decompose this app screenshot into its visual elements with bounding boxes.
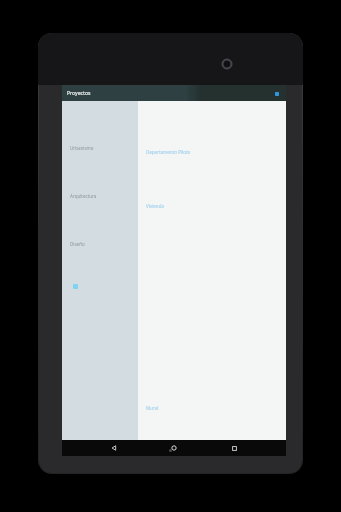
button[interactable]: Urbanismo <box>62 143 138 153</box>
button[interactable]: Diseño <box>62 239 138 249</box>
button[interactable]: Back <box>106 440 122 456</box>
staticText: Mural <box>146 405 159 411</box>
button[interactable]: Recent apps <box>226 440 242 456</box>
staticText: Arquitectura <box>70 193 97 199</box>
button[interactable]: Acción <box>272 89 281 98</box>
button[interactable]: Mural <box>138 403 159 413</box>
staticText: Vivienda <box>146 203 164 209</box>
staticText: Urbanismo <box>70 145 94 151</box>
button[interactable]: Departamento Piloto <box>138 147 191 157</box>
button[interactable]: Info <box>70 281 80 291</box>
staticText: Diseño <box>70 241 85 247</box>
button[interactable]: Proyectos <box>67 90 91 97</box>
button[interactable]: Home <box>166 440 182 456</box>
button[interactable]: Arquitectura <box>62 191 138 201</box>
staticText: Departamento Piloto <box>146 149 191 155</box>
button[interactable]: Vivienda <box>138 201 164 211</box>
staticText: Proyectos <box>67 90 91 97</box>
